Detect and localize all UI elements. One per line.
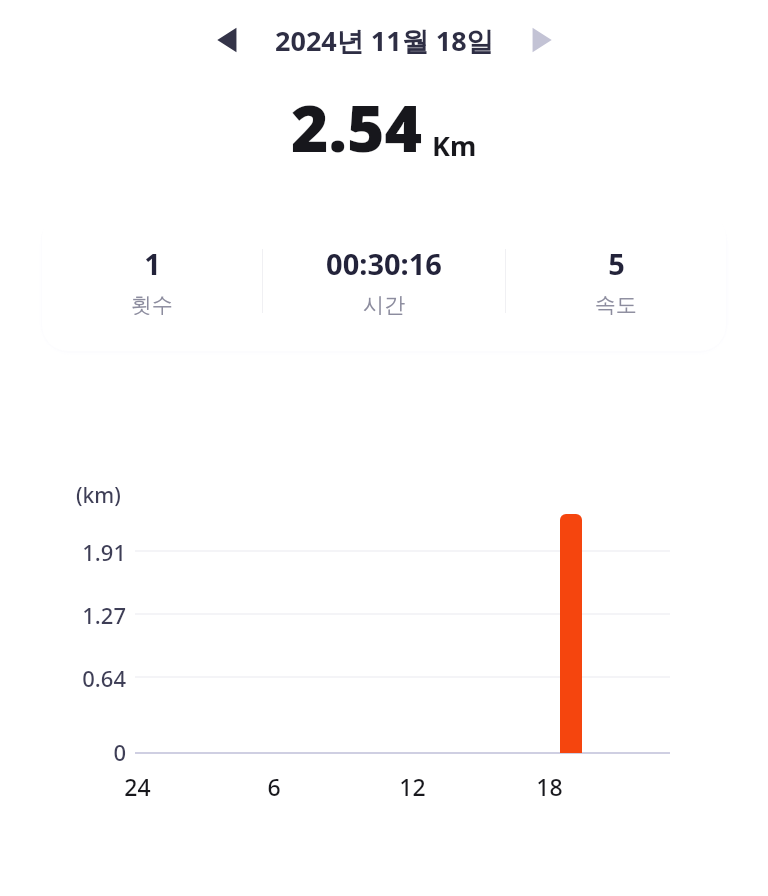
staticText: 5 (608, 244, 625, 283)
staticText: 0.64 (82, 663, 126, 693)
staticText: 1.91 (82, 537, 126, 567)
staticText: 18 (536, 771, 563, 802)
staticText: 2.54 (291, 84, 423, 171)
staticText: 시간 (363, 292, 405, 318)
staticText: 1.27 (82, 600, 126, 630)
button[interactable]: 00:30:16 (263, 238, 505, 324)
button[interactable]: 1 (42, 238, 262, 324)
staticText: 횟수 (131, 292, 173, 318)
staticText: (km) (76, 481, 121, 510)
button[interactable]: Previous day (205, 18, 249, 62)
staticText: 1 (144, 244, 161, 283)
staticText: 24 (124, 771, 151, 802)
staticText: 2024년 11월 18일 (275, 22, 494, 59)
staticText: 12 (399, 771, 426, 802)
staticText: 속도 (595, 292, 637, 318)
staticText: 6 (267, 771, 281, 802)
staticText: 0 (113, 737, 126, 767)
staticText: Km (432, 127, 477, 164)
button[interactable]: Next day (520, 18, 564, 62)
staticText: 00:30:16 (326, 244, 442, 283)
button[interactable]: 5 (506, 238, 726, 324)
